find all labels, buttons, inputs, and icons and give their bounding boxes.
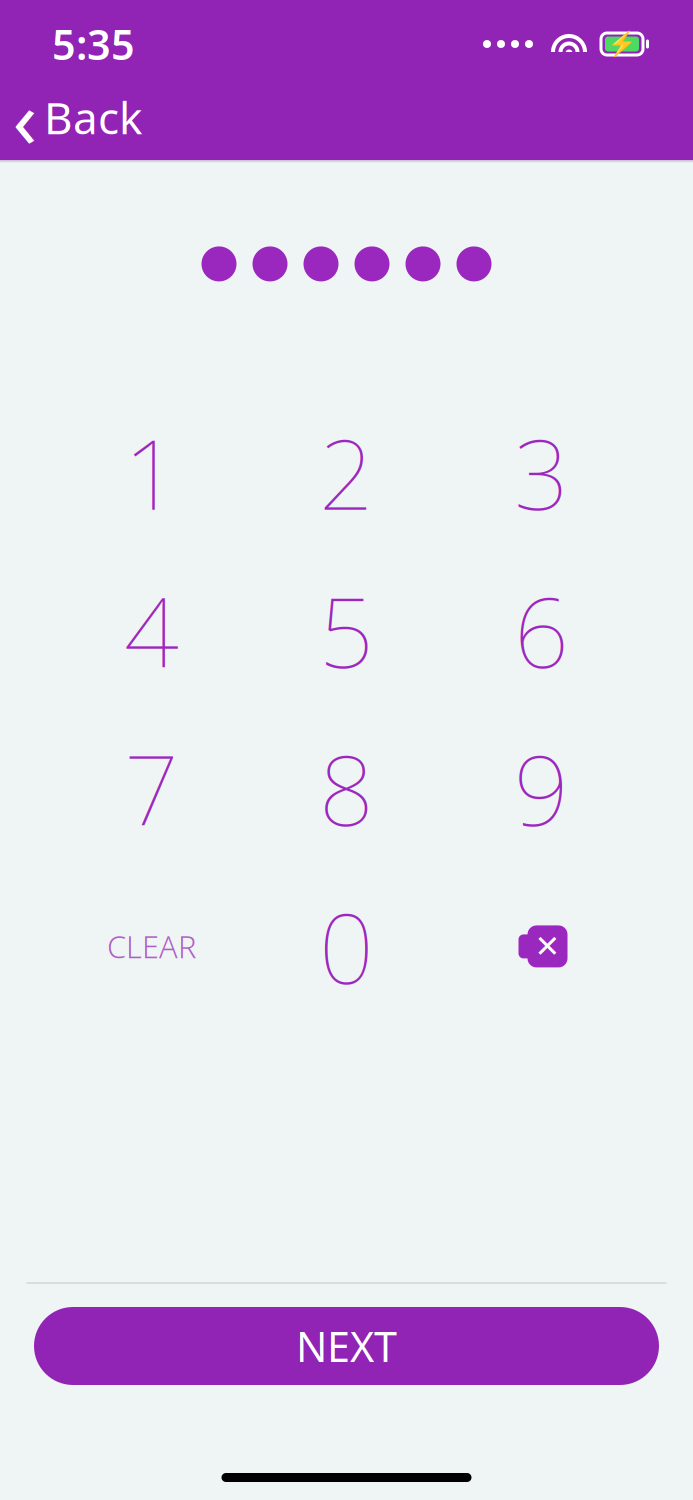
staticText: NEXT — [296, 1319, 397, 1373]
staticText: ⚡ — [607, 30, 637, 58]
staticText: 5:35 — [52, 17, 135, 71]
staticText: 6 — [514, 567, 569, 694]
staticText: 9 — [514, 725, 569, 852]
button[interactable]: 1 — [54, 393, 249, 551]
staticText: Back — [44, 88, 142, 146]
button[interactable]: 8 — [249, 709, 444, 867]
staticText: CLEAR — [107, 926, 196, 967]
button[interactable]: Delete — [444, 867, 639, 1025]
staticText: 5 — [319, 567, 374, 694]
button[interactable]: CLEAR — [54, 867, 249, 1025]
button[interactable]: 7 — [54, 709, 249, 867]
staticText: 1 — [124, 409, 179, 536]
button[interactable]: NEXT — [34, 1307, 659, 1385]
staticText: 4 — [124, 567, 179, 694]
staticText: ‹ — [12, 64, 37, 170]
button[interactable]: 9 — [444, 709, 639, 867]
button[interactable]: 4 — [54, 551, 249, 709]
staticText: 7 — [124, 725, 179, 852]
staticText: 0 — [319, 883, 374, 1010]
button[interactable]: 5 — [249, 551, 444, 709]
staticText: 8 — [319, 725, 374, 852]
button[interactable]: 2 — [249, 393, 444, 551]
button[interactable]: 3 — [444, 393, 639, 551]
button[interactable]: 0 — [249, 867, 444, 1025]
staticText: 2 — [319, 409, 374, 536]
staticText: ✕ — [534, 929, 560, 964]
button[interactable]: ‹ — [0, 88, 162, 146]
button[interactable]: 6 — [444, 551, 639, 709]
staticText: 3 — [514, 409, 569, 536]
